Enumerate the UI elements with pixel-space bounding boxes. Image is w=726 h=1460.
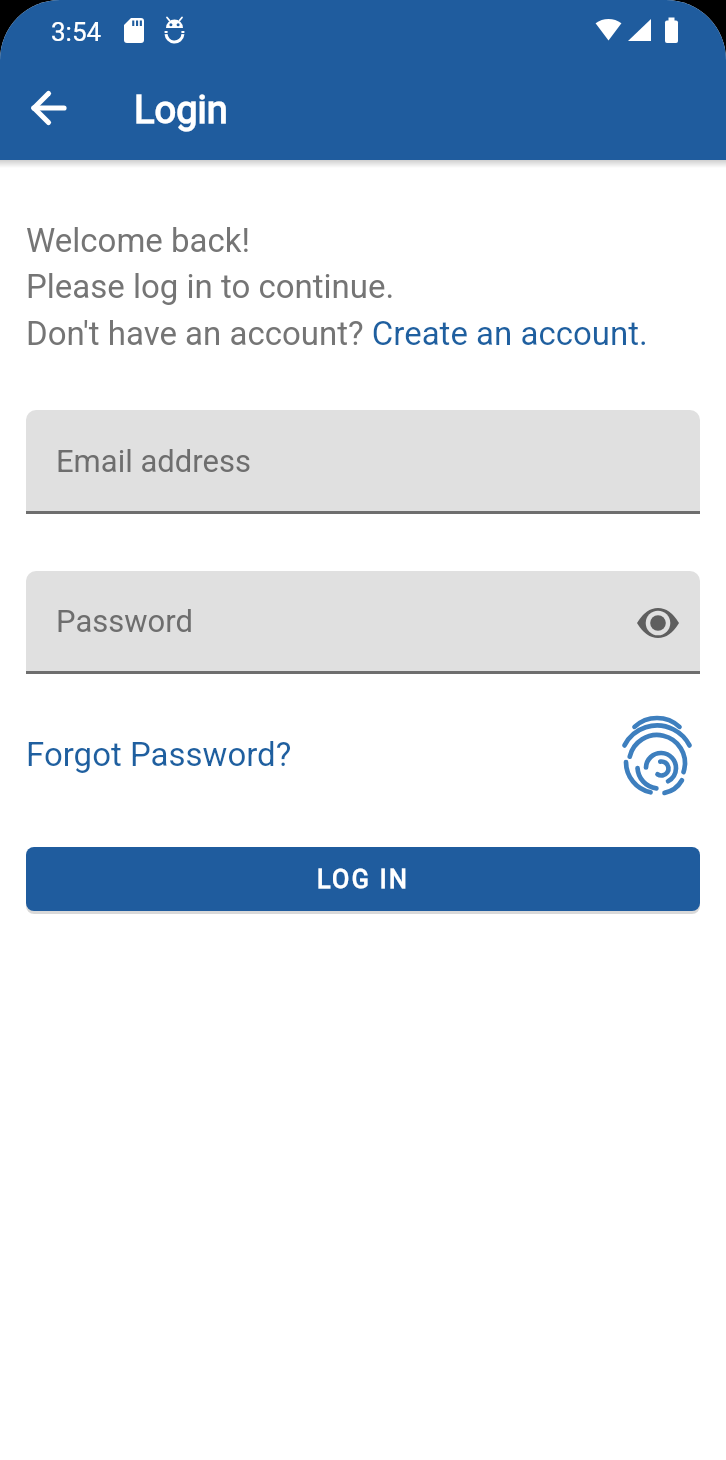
button[interactable] [633, 604, 683, 642]
button[interactable]: Email address [26, 410, 700, 511]
staticText: LOG IN [317, 865, 410, 894]
staticText: 3:54 [51, 17, 102, 47]
button[interactable] [22, 81, 76, 135]
button[interactable]: LOG IN [26, 847, 700, 911]
staticText: Welcome back! Please log in to continue.… [26, 221, 648, 353]
button[interactable]: Forgot Password? [26, 735, 292, 774]
staticText: Password [56, 603, 193, 639]
button[interactable]: Password [26, 571, 700, 671]
staticText: Forgot Password? [26, 735, 292, 774]
staticText: Email address [56, 443, 251, 479]
button[interactable] [619, 713, 695, 795]
staticText: Login [134, 88, 228, 133]
